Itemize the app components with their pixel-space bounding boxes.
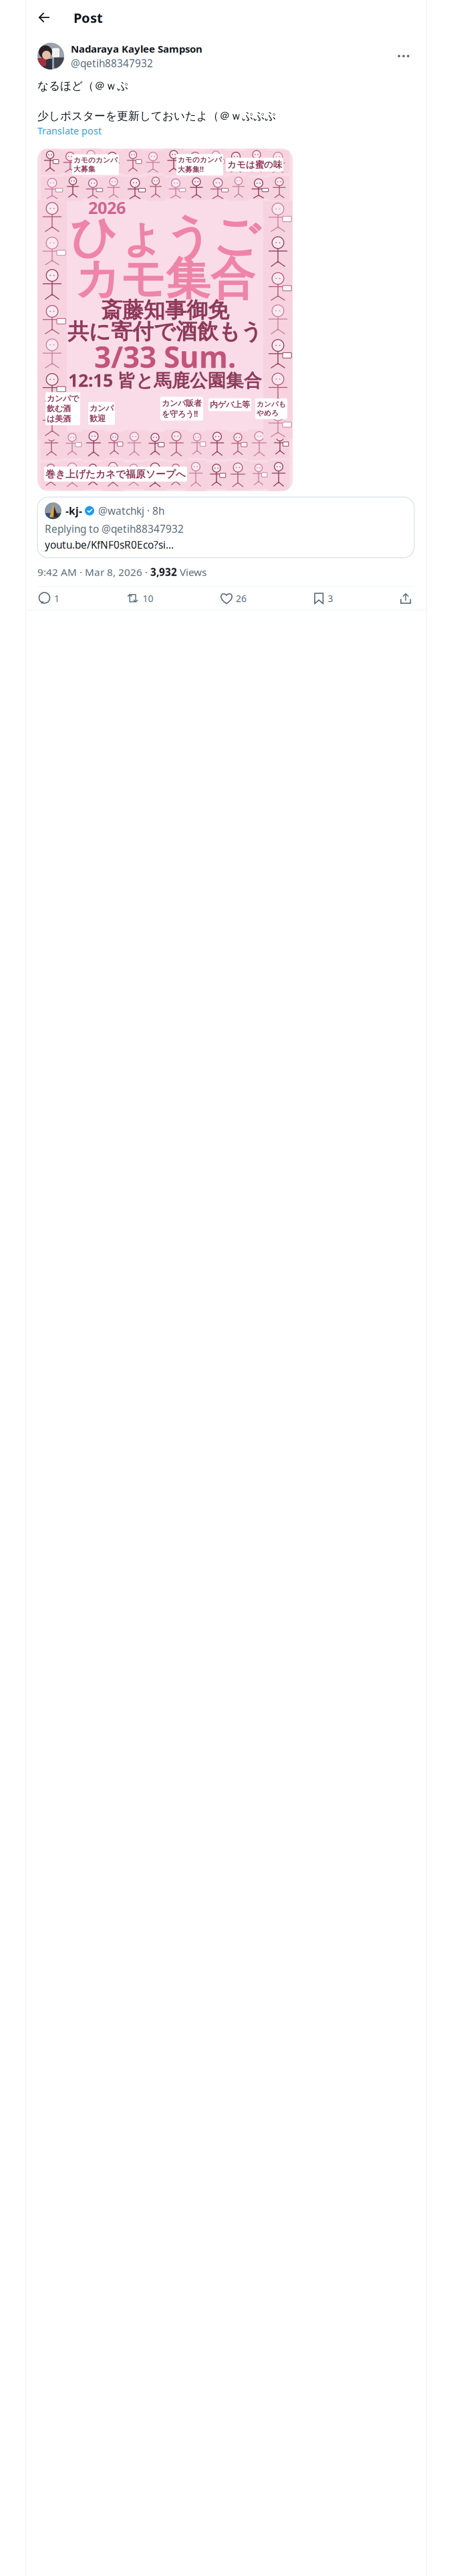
button[interactable]: Share	[400, 587, 412, 610]
staticText: @qetih88347932	[71, 56, 153, 70]
button[interactable]: -kj-	[37, 497, 414, 558]
staticText: 9:42 AM · Mar 8, 2026 ·	[37, 565, 150, 579]
button[interactable]: Like	[220, 587, 247, 610]
staticText: -kj-	[65, 504, 82, 518]
staticText: 斎藤知事御免	[101, 297, 229, 324]
staticText: ひょうご	[70, 208, 260, 266]
staticText: 3/33 Sum.	[94, 337, 236, 377]
staticText: カンパも やめろ	[257, 400, 286, 418]
staticText: 3,932	[150, 565, 177, 579]
staticText: 巻き上げたカネで福原ソープへ	[45, 468, 186, 480]
staticText: 10	[143, 592, 153, 605]
staticText: カモ集合	[75, 251, 255, 307]
staticText: 共に寄付で酒飲もう	[67, 318, 263, 345]
staticText: Views	[177, 565, 206, 579]
staticText: 3	[328, 592, 333, 605]
staticText: 12:15 皆と馬鹿公園集合	[68, 368, 262, 392]
staticText: 2026	[88, 196, 126, 219]
staticText: カンパで 飲む酒 は美酒	[47, 393, 79, 424]
staticText: カモは蜜の味	[227, 159, 282, 170]
staticText: なるほど（＠ｗぷ	[37, 79, 128, 93]
button[interactable]: Bookmark	[314, 587, 333, 610]
staticText: 少しポスターを更新しておいたよ（＠ｗぷぷぷ	[37, 109, 276, 123]
staticText: 内ゲバ上等	[210, 400, 250, 410]
button[interactable]: Repost	[127, 587, 153, 610]
staticText: Translate post	[37, 124, 102, 137]
staticText: @watchkj · 8h	[98, 504, 164, 518]
staticText: カンパ販者 を守ろう!!	[162, 398, 202, 419]
staticText: カモのカンパ 大募集	[73, 156, 118, 174]
staticText: カモのカンパ 大募集!!	[178, 155, 222, 174]
staticText: 26	[236, 592, 247, 605]
staticText: youtu.be/KfNF0sR0Eco?si…	[45, 538, 174, 552]
staticText: Post	[73, 9, 103, 27]
staticText: Nadaraya Kaylee Sampson	[71, 42, 202, 56]
button[interactable]: More	[394, 46, 414, 66]
button[interactable]: Reply	[38, 587, 59, 610]
staticText: カンパ 歓迎	[90, 403, 114, 423]
button[interactable]: Translate post	[37, 124, 102, 137]
button[interactable]: Back	[33, 6, 55, 29]
staticText: Replying to @qetih88347932	[45, 522, 184, 536]
staticText: 1	[54, 592, 59, 605]
